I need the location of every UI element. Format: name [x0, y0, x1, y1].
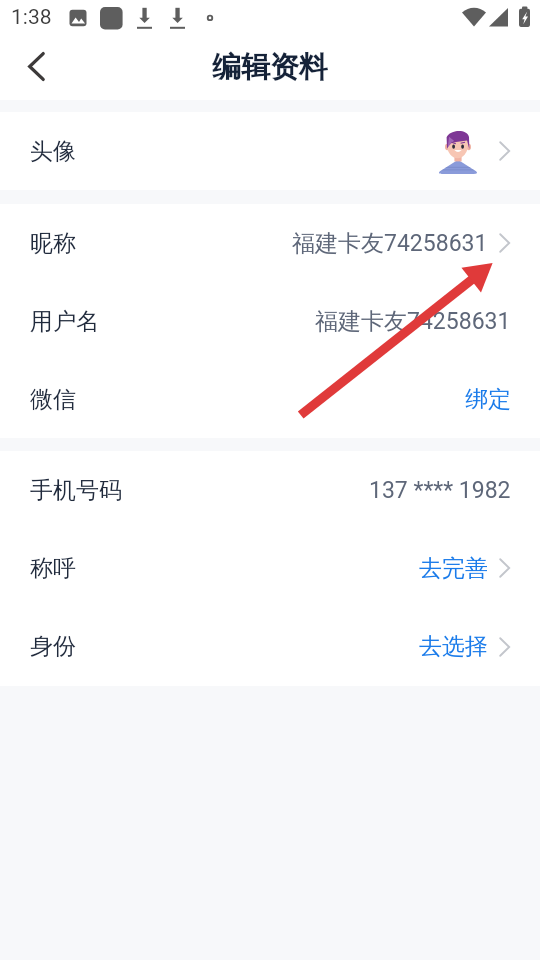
button[interactable]: Back: [8, 44, 64, 89]
staticText: 福建卡友74258631: [292, 229, 488, 258]
staticText: 编辑资料: [212, 49, 328, 86]
staticText: 1:38: [11, 5, 52, 30]
button[interactable]: 用户名: [0, 282, 540, 360]
staticText: 头像: [30, 137, 76, 166]
staticText: 微信: [30, 385, 76, 414]
button[interactable]: 身份: [0, 607, 540, 686]
staticText: 去选择: [419, 632, 488, 661]
button[interactable]: 头像: [0, 112, 540, 190]
button[interactable]: 昵称: [0, 204, 540, 282]
staticText: 137 **** 1982: [369, 477, 511, 504]
staticText: 绑定: [465, 385, 511, 414]
staticText: 身份: [30, 632, 76, 661]
button[interactable]: 称呼: [0, 529, 540, 607]
staticText: 福建卡友74258631: [315, 307, 511, 336]
button[interactable]: 手机号码: [0, 451, 540, 529]
staticText: 昵称: [30, 229, 76, 258]
staticText: 去完善: [419, 554, 488, 583]
staticText: 用户名: [30, 307, 99, 336]
staticText: 手机号码: [30, 476, 122, 505]
button[interactable]: 微信: [0, 360, 540, 438]
staticText: 称呼: [30, 554, 76, 583]
